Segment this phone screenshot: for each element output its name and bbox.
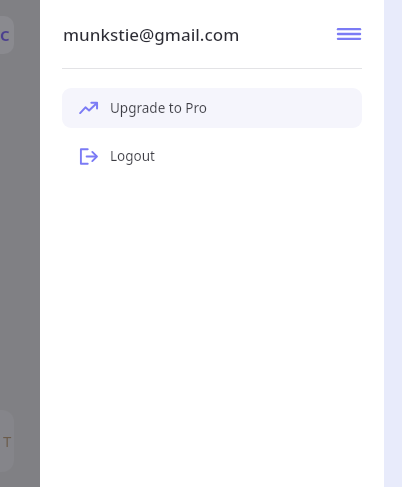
staticText: C bbox=[0, 25, 10, 45]
button[interactable]: Upgrade to Pro bbox=[62, 88, 362, 128]
staticText: Upgrade to Pro bbox=[110, 99, 207, 117]
staticText: munkstie@gmail.com bbox=[63, 23, 240, 46]
button[interactable]: Menu bbox=[334, 19, 364, 49]
staticText: T bbox=[3, 431, 12, 451]
button[interactable]: Logout bbox=[62, 136, 362, 176]
staticText: Logout bbox=[110, 147, 155, 165]
